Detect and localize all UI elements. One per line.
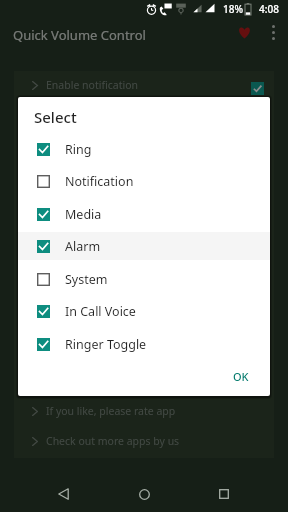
staticText: Media [65, 206, 102, 223]
staticText: Quick Volume Control [13, 26, 146, 44]
button[interactable]: Recents [206, 476, 242, 512]
staticText: Notification [65, 173, 134, 190]
staticText: OK [233, 369, 249, 384]
button[interactable]: Media [18, 198, 270, 231]
staticText: If you like, please rate app [46, 404, 176, 418]
button[interactable]: Enable notification [14, 71, 274, 99]
staticText: Select [34, 107, 77, 127]
button[interactable]: Favorite [232, 20, 256, 44]
button[interactable]: Back [45, 476, 81, 512]
button[interactable]: Notification [18, 165, 270, 198]
button[interactable]: In Call Voice [18, 295, 270, 328]
staticText: Ringer Toggle [65, 336, 147, 353]
staticText: Alarm [65, 238, 101, 255]
staticText: Ring [65, 141, 92, 158]
staticText: Check out more apps by us [46, 434, 180, 448]
staticText: Enable notification [46, 78, 138, 92]
staticText: System [65, 271, 108, 288]
staticText: In Call Voice [65, 303, 136, 320]
staticText: 18% [223, 2, 243, 16]
button[interactable]: System [18, 263, 270, 296]
button[interactable]: Ring [18, 133, 270, 166]
staticText: 4:08 [259, 2, 279, 16]
button[interactable]: Ringer Toggle [18, 328, 270, 361]
button[interactable]: Check out more apps by us [14, 427, 274, 455]
button[interactable]: More options [261, 20, 285, 44]
button[interactable]: Alarm [18, 230, 270, 263]
button[interactable]: Home [126, 476, 162, 512]
button[interactable]: OK [226, 364, 256, 389]
button[interactable]: If you like, please rate app [14, 397, 274, 425]
